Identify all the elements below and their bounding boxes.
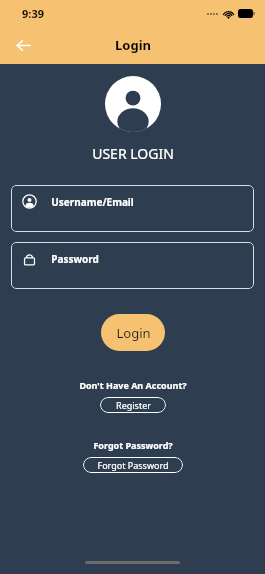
staticText: Login	[116, 324, 151, 342]
button[interactable]: Password	[11, 242, 254, 289]
staticText: USER LOGIN	[92, 144, 174, 163]
button[interactable]: Back	[8, 30, 38, 60]
staticText: Username/Email	[51, 195, 134, 209]
button[interactable]: Username/Email	[11, 185, 254, 232]
staticText: Forgot Password?	[93, 439, 173, 451]
button[interactable]: Forgot Password	[83, 457, 183, 473]
staticText: Forgot Password	[97, 459, 169, 471]
staticText: Password	[51, 252, 99, 266]
staticText: Don't Have An Account?	[79, 379, 187, 391]
staticText: Register	[116, 399, 151, 411]
staticText: 9:39	[22, 6, 44, 21]
button[interactable]: Login	[101, 314, 165, 351]
button[interactable]: Register	[100, 397, 166, 413]
staticText: Login	[115, 36, 151, 54]
